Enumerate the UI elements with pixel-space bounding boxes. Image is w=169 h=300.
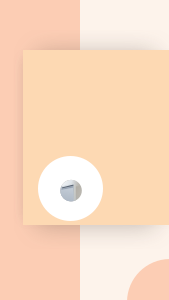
button[interactable]: Open bbox=[38, 156, 103, 221]
